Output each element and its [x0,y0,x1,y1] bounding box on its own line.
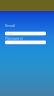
staticText: Password [5,36,22,41]
staticText: Email [5,23,15,28]
staticText: name [6,32,13,35]
